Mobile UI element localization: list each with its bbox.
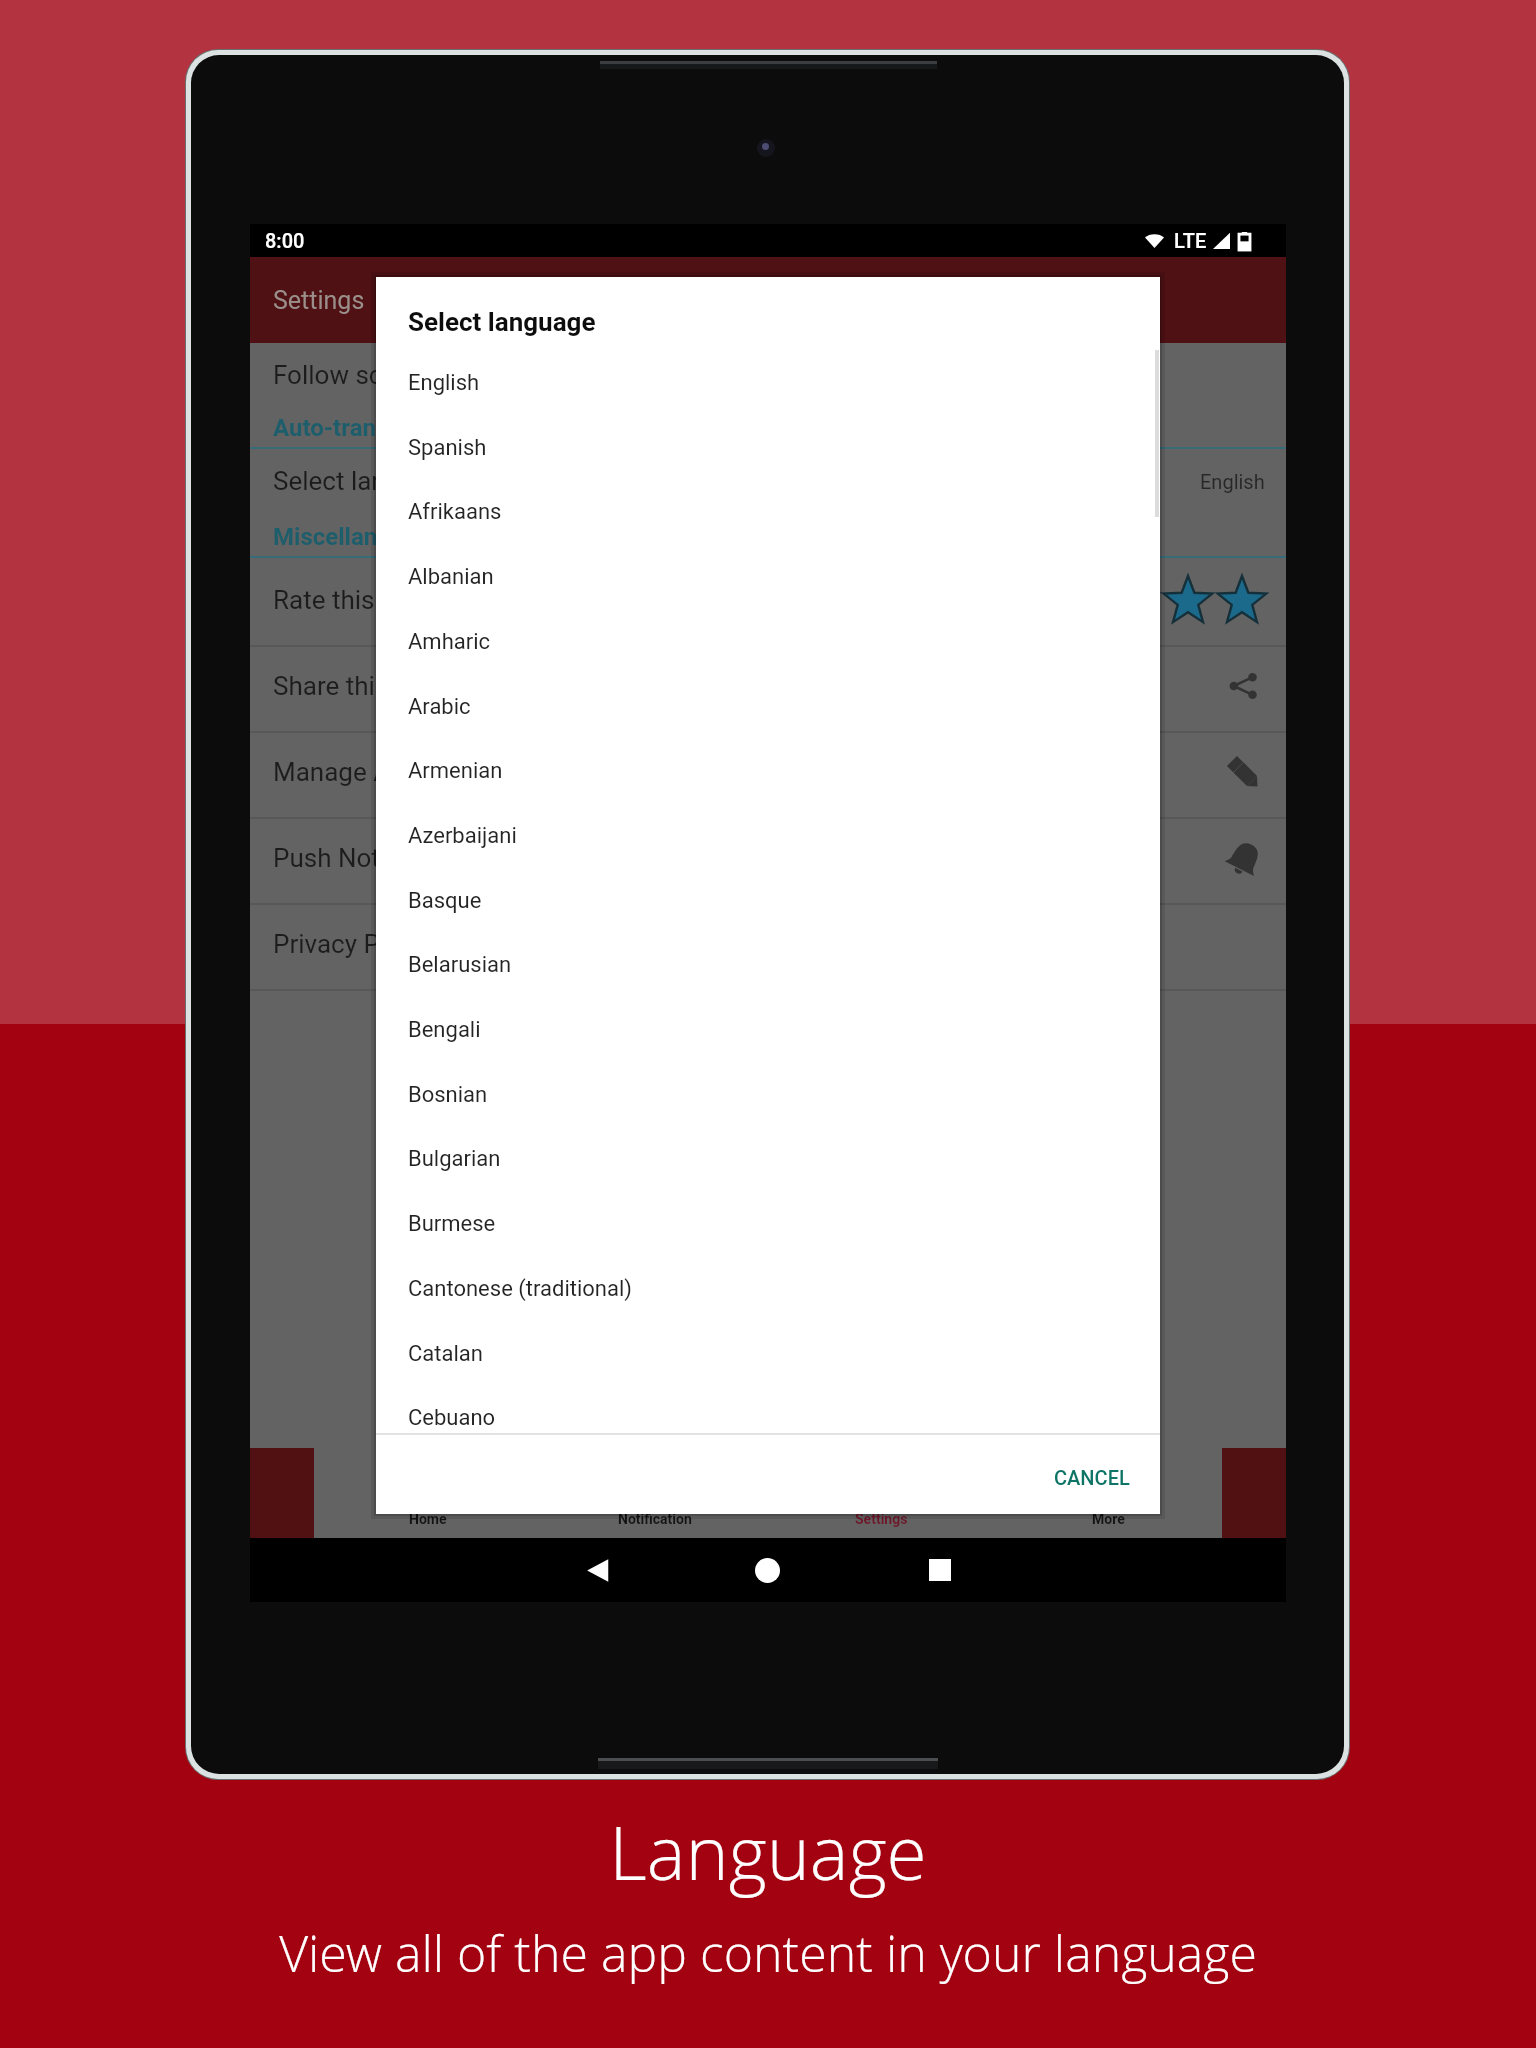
staticText: Armenian xyxy=(408,758,503,784)
staticText: Afrikaans xyxy=(408,499,502,525)
staticText: Spanish xyxy=(408,435,487,461)
staticText: Basque xyxy=(408,888,482,914)
staticText: Push Notification xyxy=(273,843,473,873)
staticText: Share this app xyxy=(273,671,439,701)
staticText: Privacy Policy xyxy=(273,929,434,959)
staticText: English xyxy=(1200,470,1265,493)
button[interactable]: Settings xyxy=(768,1448,995,1538)
staticText: Arabic xyxy=(408,694,471,720)
staticText: Burmese xyxy=(408,1211,496,1237)
staticText: 8:00 xyxy=(265,229,305,252)
staticText: Auto-translate xyxy=(273,414,429,442)
staticText: Follow school xyxy=(273,360,433,390)
button[interactable]: Burmese xyxy=(376,1198,1160,1250)
staticText: Manage Account xyxy=(273,757,470,787)
button[interactable]: Privacy Policy xyxy=(250,918,1286,970)
staticText: Settings xyxy=(273,286,365,315)
staticText: LTE xyxy=(1174,229,1207,252)
button[interactable]: Bosnian xyxy=(376,1069,1160,1121)
staticText: Cebuano xyxy=(408,1405,496,1431)
button[interactable]: Afrikaans xyxy=(376,486,1160,538)
button[interactable]: Home xyxy=(755,1558,780,1583)
staticText: Bosnian xyxy=(408,1082,488,1108)
staticText: English xyxy=(408,370,480,396)
staticText: Bengali xyxy=(408,1017,481,1043)
staticText: View all of the app content in your lang… xyxy=(0,1919,1536,1987)
button[interactable]: Share this app xyxy=(1217,660,1269,712)
button[interactable]: Cebuano xyxy=(376,1392,1160,1444)
button[interactable]: Home xyxy=(314,1448,541,1538)
staticText: Settings xyxy=(855,1511,908,1527)
button[interactable]: Bulgarian xyxy=(376,1133,1160,1185)
staticText: Bulgarian xyxy=(408,1146,501,1172)
button[interactable]: English xyxy=(376,357,1160,409)
button[interactable]: Back xyxy=(585,1557,612,1584)
staticText: CANCEL xyxy=(1054,1466,1130,1489)
staticText: Catalan xyxy=(408,1341,483,1367)
button[interactable]: Rate this app xyxy=(250,574,1286,626)
staticText: Select language xyxy=(408,307,596,337)
button[interactable]: Amharic xyxy=(376,616,1160,668)
button[interactable]: Push Notification xyxy=(250,832,1286,884)
staticText: Miscellaneous xyxy=(273,523,430,551)
button[interactable]: Belarusian xyxy=(376,939,1160,991)
staticText: Select language xyxy=(273,466,458,496)
staticText: Notification xyxy=(618,1511,692,1527)
button[interactable]: Rate this app xyxy=(1000,572,1270,628)
button[interactable]: Bengali xyxy=(376,1004,1160,1056)
staticText: Belarusian xyxy=(408,952,512,978)
button[interactable]: Share this app xyxy=(250,660,1286,712)
staticText: Albanian xyxy=(408,564,494,590)
button[interactable]: Arabic xyxy=(376,681,1160,733)
staticText: Azerbaijani xyxy=(408,823,517,849)
staticText: Rate this app xyxy=(273,585,425,615)
button[interactable]: Catalan xyxy=(376,1328,1160,1380)
staticText: Cantonese (traditional) xyxy=(408,1276,632,1302)
button[interactable]: Push Notification xyxy=(1217,832,1269,884)
button[interactable]: Armenian xyxy=(376,745,1160,797)
button[interactable]: Manage Account xyxy=(1217,746,1269,798)
button[interactable]: Select language xyxy=(250,455,1286,507)
staticText: Amharic xyxy=(408,629,491,655)
button[interactable]: Azerbaijani xyxy=(376,810,1160,862)
button[interactable]: Basque xyxy=(376,875,1160,927)
button[interactable]: More xyxy=(995,1448,1222,1538)
button[interactable]: Cantonese (traditional) xyxy=(376,1263,1160,1315)
button[interactable]: Spanish xyxy=(376,422,1160,474)
staticText: Home xyxy=(409,1511,447,1527)
button[interactable]: Notification xyxy=(541,1448,768,1538)
button[interactable]: CANCEL xyxy=(1038,1445,1146,1509)
button[interactable]: Albanian xyxy=(376,551,1160,603)
staticText: Language xyxy=(0,1802,1536,1901)
button[interactable]: Follow school xyxy=(250,349,1286,401)
button[interactable]: Manage Account xyxy=(250,746,1286,798)
staticText: More xyxy=(1092,1511,1125,1527)
